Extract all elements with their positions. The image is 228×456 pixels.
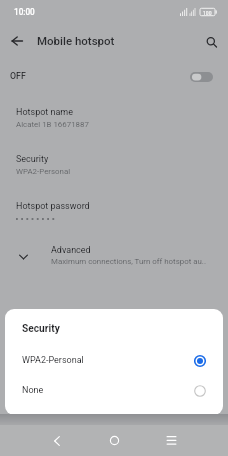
button[interactable]: Advanced: [0, 242, 228, 282]
button[interactable]: OFF: [0, 59, 228, 94]
button[interactable]: Search: [198, 29, 226, 57]
staticText: WPA2-Personal: [22, 355, 84, 366]
staticText: Mobile hotspot: [37, 34, 115, 47]
staticText: Maximum connections, Turn off hotspot au…: [51, 257, 207, 266]
staticText: Hotspot password: [16, 201, 90, 212]
button[interactable]: Hotspot name: [0, 103, 228, 150]
button[interactable]: Security: [0, 150, 228, 197]
button[interactable]: WPA2-Personal: [5, 346, 223, 376]
button[interactable]: Back: [3, 27, 31, 55]
staticText: Alcatel 1B 16671887: [16, 120, 89, 129]
staticText: Hotspot name: [16, 107, 74, 118]
staticText: 100: [203, 10, 212, 16]
button[interactable]: None: [5, 376, 223, 406]
staticText: OFF: [10, 71, 26, 81]
button[interactable]: Back: [34, 425, 80, 456]
staticText: 10:00: [14, 7, 35, 17]
staticText: Security: [22, 323, 60, 335]
staticText: None: [22, 385, 44, 396]
staticText: Security: [16, 154, 49, 165]
button[interactable]: Hotspot password: [0, 197, 228, 241]
button[interactable]: Recent apps: [148, 425, 194, 456]
staticText: WPA2-Personal: [16, 167, 71, 176]
staticText: Advanced: [51, 245, 91, 256]
button[interactable]: Home: [91, 425, 137, 456]
